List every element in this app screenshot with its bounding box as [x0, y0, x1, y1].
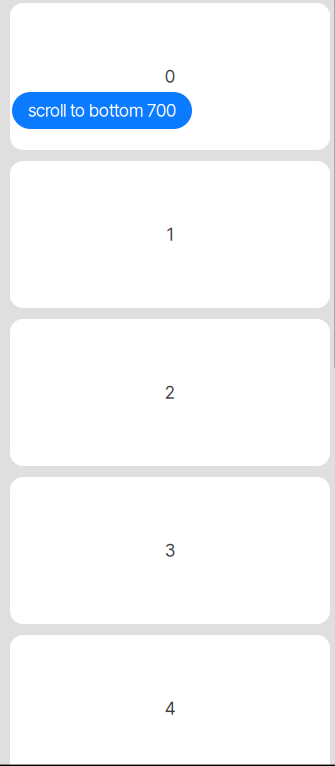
staticText: 4: [165, 698, 175, 719]
button[interactable]: scroll to bottom 700: [12, 92, 192, 129]
staticText: 1: [167, 224, 173, 245]
staticText: 3: [165, 540, 175, 561]
staticText: scroll to bottom 700: [28, 100, 176, 121]
staticText: 0: [165, 66, 175, 87]
staticText: 2: [165, 382, 175, 403]
